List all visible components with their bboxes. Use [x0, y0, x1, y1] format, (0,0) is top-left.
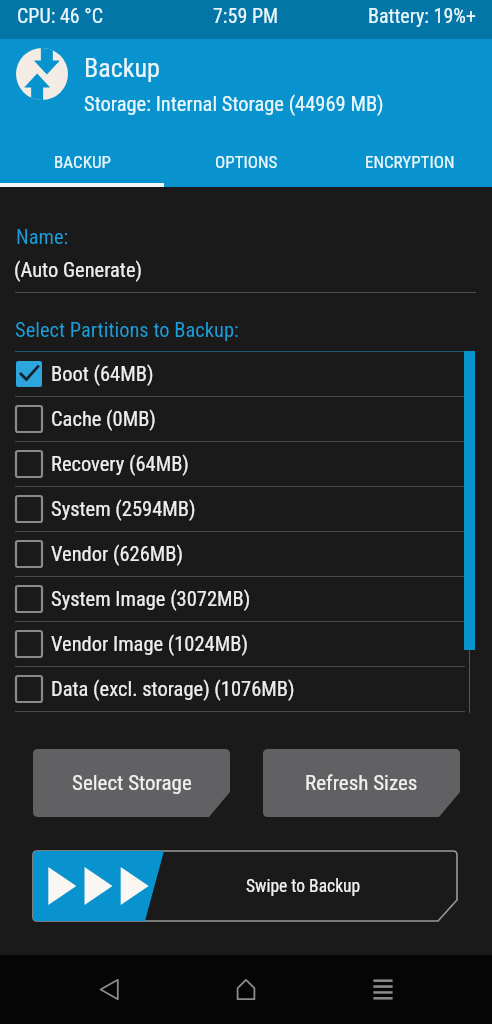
staticText: Swipe to Backup	[246, 876, 361, 897]
staticText: OPTIONS	[215, 152, 278, 172]
staticText: Backup	[84, 53, 160, 83]
staticText: Vendor (626MB)	[51, 542, 184, 566]
staticText: Name:	[16, 225, 69, 249]
staticText: Select Partitions to Backup:	[15, 318, 239, 342]
staticText: ENCRYPTION	[365, 152, 455, 172]
button[interactable]: Boot (64MB)	[0, 352, 492, 396]
staticText: Recovery (64MB)	[51, 452, 189, 476]
staticText: Data (excl. storage) (1076MB)	[51, 677, 295, 701]
staticText: System Image (3072MB)	[51, 587, 251, 611]
button[interactable]: Recent apps	[349, 955, 417, 1024]
button[interactable]: OPTIONS	[164, 125, 328, 187]
staticText: Battery: 19%+	[368, 4, 476, 27]
staticText: CPU: 46 °C	[17, 4, 104, 27]
staticText: Storage: Internal Storage (44969 MB)	[84, 92, 384, 116]
button[interactable]: System Image (3072MB)	[0, 577, 492, 621]
button[interactable]: Back	[75, 955, 143, 1024]
staticText: Cache (0MB)	[51, 407, 156, 431]
button[interactable]: ENCRYPTION	[328, 125, 492, 187]
button[interactable]: Home	[212, 955, 280, 1024]
staticText: Vendor Image (1024MB)	[51, 632, 248, 656]
button[interactable]: Vendor (626MB)	[0, 532, 492, 576]
button[interactable]: Select Storage	[33, 749, 230, 817]
button[interactable]: Data (excl. storage) (1076MB)	[0, 667, 492, 711]
staticText: Select Storage	[72, 771, 192, 796]
staticText: BACKUP	[54, 152, 111, 172]
staticText: Refresh Sizes	[305, 771, 418, 796]
staticText: 7:59 PM	[213, 4, 279, 27]
button[interactable]: Recovery (64MB)	[0, 442, 492, 486]
button[interactable]: System (2594MB)	[0, 487, 492, 531]
staticText: System (2594MB)	[51, 497, 196, 521]
button[interactable]: Cache (0MB)	[0, 397, 492, 441]
button[interactable]: Swipe to Backup	[33, 851, 457, 921]
staticText: Boot (64MB)	[51, 362, 154, 386]
staticText: (Auto Generate)	[14, 258, 143, 282]
button[interactable]: BACKUP	[0, 125, 164, 187]
button[interactable]: Refresh Sizes	[263, 749, 460, 817]
button[interactable]: Vendor Image (1024MB)	[0, 622, 492, 666]
